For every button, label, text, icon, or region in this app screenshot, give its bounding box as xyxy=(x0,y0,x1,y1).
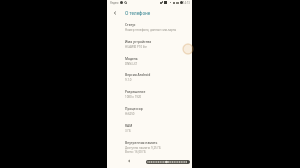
staticText: Имя устройства xyxy=(125,40,152,44)
button[interactable]: Версия Android xyxy=(125,73,190,90)
staticText: Процессор xyxy=(125,107,143,111)
staticText: DNN-LX1 xyxy=(125,62,138,66)
staticText: 14:13 xyxy=(183,1,190,5)
button[interactable]: Разрешение xyxy=(125,90,190,107)
staticText: Версия Android xyxy=(125,73,151,77)
staticText: 3 ГБ xyxy=(125,129,131,133)
staticText: 1080 x 1920 xyxy=(125,95,142,99)
staticText: RAM xyxy=(125,124,133,128)
staticText: Разрешение xyxy=(125,90,146,94)
button[interactable]: Back xyxy=(110,8,119,17)
staticText: Номер телефона, данные сим-карты xyxy=(125,28,177,32)
staticText: Всего: 16,00 ГБ xyxy=(125,150,146,154)
button[interactable]: Внутренняя память xyxy=(125,141,190,158)
button[interactable]: RAM xyxy=(125,124,190,141)
staticText: Внутренняя память xyxy=(125,141,158,145)
button[interactable]: Статус xyxy=(125,23,190,40)
button[interactable]: Back xyxy=(126,158,132,164)
button[interactable]: Имя устройства xyxy=(125,40,190,57)
staticText: HUAWEI P10 lite xyxy=(125,45,147,49)
staticText: 9.1.0 xyxy=(125,78,132,82)
staticText: Статус xyxy=(125,23,136,27)
staticText: Доступно памяти: 9,25 ГБ xyxy=(125,146,161,150)
staticText: Яндекс xyxy=(110,1,119,5)
staticText: Модель xyxy=(125,57,138,61)
staticText: Hi6250 xyxy=(125,112,135,116)
button[interactable] xyxy=(146,160,190,164)
button[interactable]: Модель xyxy=(125,57,190,74)
staticText: О телефоне xyxy=(125,10,151,16)
button[interactable]: Процессор xyxy=(125,107,190,124)
